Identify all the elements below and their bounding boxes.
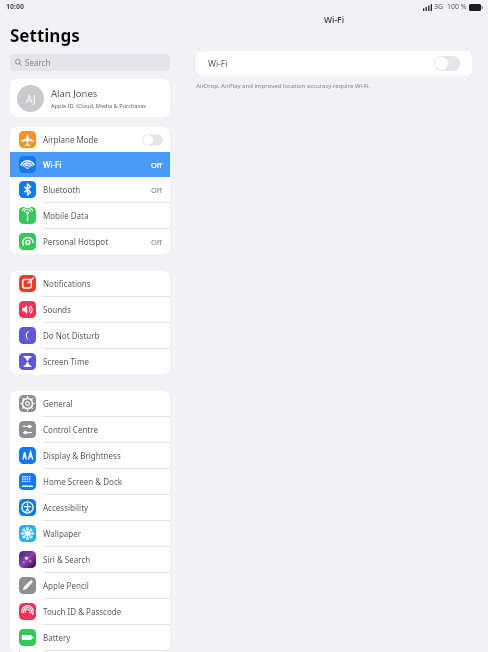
staticText: Sounds [43,304,163,315]
staticText: Personal Hotspot [43,236,151,247]
staticText: Airplane Mode [43,134,142,145]
button[interactable]: Display & Brightness [10,443,170,468]
staticText: Wi-Fi [208,58,434,70]
button[interactable]: General [10,391,170,416]
button[interactable]: Wi-Fi [196,51,472,76]
button[interactable]: Airplane Mode [10,127,170,152]
staticText: Bluetooth [43,184,151,195]
button[interactable]: Toggle [434,56,460,71]
staticText: Wallpaper [43,528,163,539]
button[interactable]: Do Not Disturb [10,323,170,348]
button[interactable]: AJ [10,79,170,117]
staticText: Screen Time [43,356,163,367]
staticText: General [43,398,163,409]
button[interactable]: Wallpaper [10,521,170,546]
button[interactable]: Notifications [10,271,170,296]
staticText: Off [151,185,163,195]
staticText: Off [151,237,163,247]
button[interactable]: Battery [10,625,170,650]
staticText: Notifications [43,278,163,289]
staticText: Touch ID & Passcode [43,606,163,617]
staticText: Off [151,160,163,170]
staticText: AJ [26,92,36,106]
staticText: 100 % [447,2,467,12]
staticText: Apple ID, iCloud, Media & Purchases [51,102,146,110]
button[interactable]: Toggle [142,134,163,146]
staticText: Battery [43,632,163,643]
staticText: Alan Jones [51,87,98,100]
button[interactable]: Privacy [10,651,170,652]
staticText: Home Screen & Dock [43,476,163,487]
button[interactable]: Siri & Search [10,547,170,572]
staticText: Siri & Search [43,554,163,565]
button[interactable]: Screen Time [10,349,170,374]
button[interactable]: Home Screen & Dock [10,469,170,494]
staticText: Wi-Fi [43,159,151,170]
button[interactable]: Wi-Fi [10,152,170,177]
button[interactable]: Search [10,54,170,71]
staticText: Display & Brightness [43,450,163,461]
staticText: Apple Pencil [43,580,163,591]
staticText: AirDrop, AirPlay and improved location a… [196,82,371,90]
button[interactable]: Personal Hotspot [10,229,170,254]
button[interactable]: Bluetooth [10,177,170,202]
staticText: Mobile Data [43,210,163,221]
button[interactable]: Accessibility [10,495,170,520]
staticText: 10:00 [6,2,24,12]
staticText: Do Not Disturb [43,330,163,341]
staticText: Wi-Fi [180,14,488,26]
staticText: Control Centre [43,424,163,435]
button[interactable]: Control Centre [10,417,170,442]
button[interactable]: Apple Pencil [10,573,170,598]
button[interactable]: Mobile Data [10,203,170,228]
button[interactable]: Sounds [10,297,170,322]
staticText: 3G [434,2,444,12]
button[interactable]: Touch ID & Passcode [10,599,170,624]
staticText: Settings [10,24,80,47]
staticText: Search [25,57,51,68]
staticText: Accessibility [43,502,163,513]
